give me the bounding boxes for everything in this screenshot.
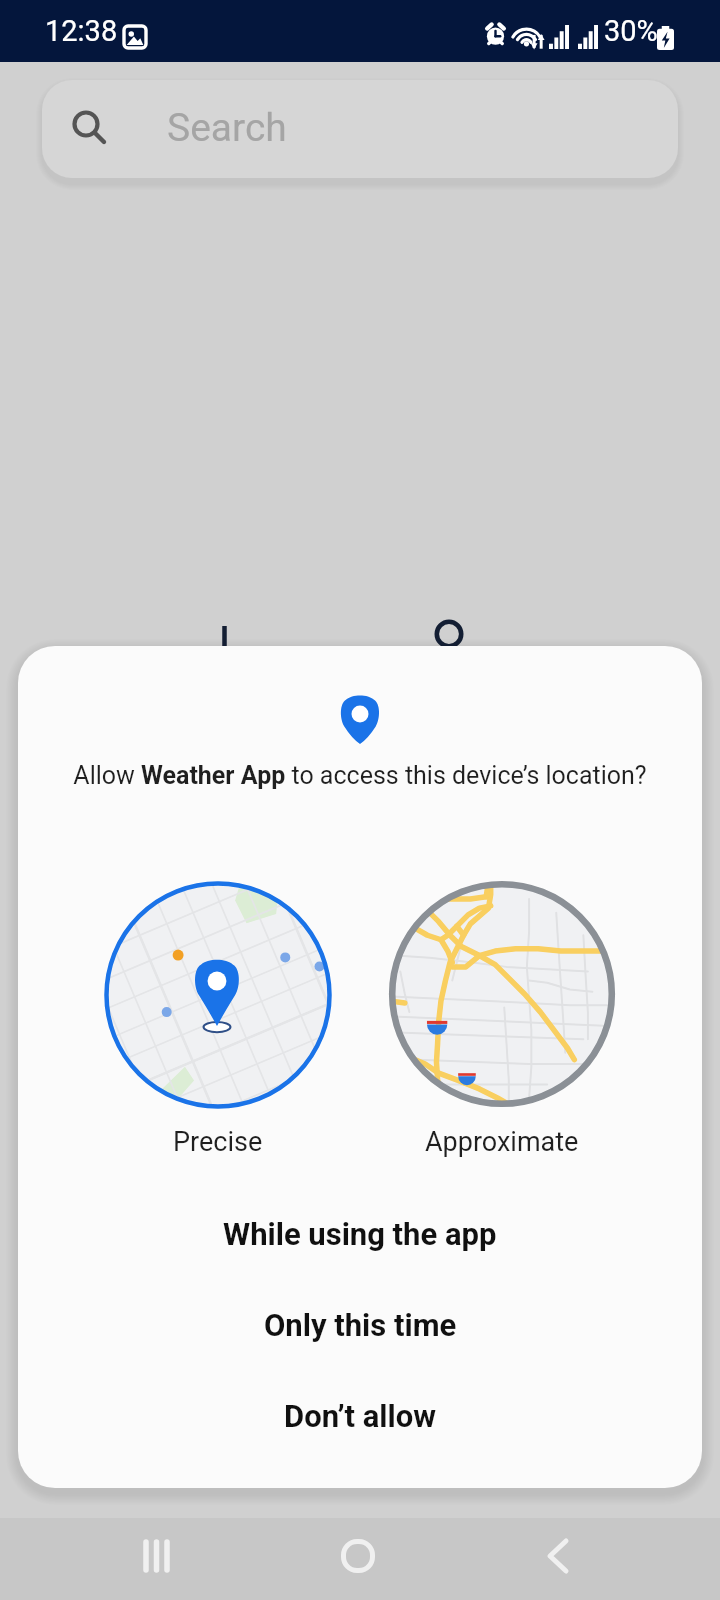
staticText: Search <box>167 105 287 151</box>
button[interactable]: Only this time <box>18 1294 702 1356</box>
button[interactable]: Recents <box>122 1524 194 1588</box>
button[interactable]: Approximate <box>389 881 615 1162</box>
button[interactable]: Search <box>42 80 678 178</box>
button[interactable]: Don’t allow <box>18 1385 702 1447</box>
staticText: Approximate <box>425 1126 579 1158</box>
staticText: 12:38 <box>45 14 118 48</box>
button[interactable]: While using the app <box>18 1203 702 1265</box>
button[interactable]: Home <box>322 1524 394 1588</box>
button[interactable]: Precise <box>104 881 332 1162</box>
staticText: Only this time <box>264 1307 457 1343</box>
staticText: 30% <box>604 14 658 48</box>
staticText: While using the app <box>223 1216 497 1252</box>
staticText: Precise <box>173 1126 263 1158</box>
staticText: Don’t allow <box>284 1398 436 1434</box>
staticText: Allow Weather App to access this device’… <box>73 761 647 790</box>
button[interactable]: Back <box>522 1524 594 1588</box>
